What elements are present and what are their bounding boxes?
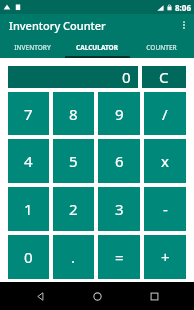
button[interactable]: Back xyxy=(23,282,57,310)
staticText: + xyxy=(161,247,170,267)
button[interactable]: 0 xyxy=(8,235,49,279)
button[interactable]: Home xyxy=(80,282,114,310)
staticText: 0 xyxy=(122,67,131,87)
button[interactable]: . xyxy=(53,235,94,279)
staticText: = xyxy=(115,247,124,267)
staticText: 8:06 xyxy=(175,2,191,13)
staticText: . xyxy=(71,247,76,267)
button[interactable]: 8 xyxy=(53,92,94,135)
staticText: INVENTORY xyxy=(14,43,51,52)
staticText: C xyxy=(159,67,169,87)
staticText: Inventory Counter xyxy=(9,18,106,33)
button[interactable]: COUNTER xyxy=(129,36,194,58)
button[interactable]: 9 xyxy=(98,92,140,135)
staticText: 4 xyxy=(24,151,33,171)
staticText: 1 xyxy=(24,199,33,219)
staticText: - xyxy=(163,199,168,219)
staticText: 8 xyxy=(69,104,78,124)
button[interactable]: 6 xyxy=(98,139,140,183)
staticText: 2 xyxy=(69,199,78,219)
staticText: / xyxy=(162,104,168,124)
staticText: 0 xyxy=(24,247,33,267)
button[interactable]: + xyxy=(144,235,186,279)
staticText: 6 xyxy=(115,151,124,171)
button[interactable]: 7 xyxy=(8,92,49,135)
staticText: x xyxy=(161,151,169,171)
button[interactable]: / xyxy=(144,92,186,135)
staticText: 7 xyxy=(24,104,33,124)
button[interactable]: C xyxy=(142,66,186,88)
button[interactable]: 5 xyxy=(53,139,94,183)
button[interactable]: INVENTORY xyxy=(0,36,64,58)
button[interactable]: More options xyxy=(174,14,194,36)
staticText: COUNTER xyxy=(146,43,177,52)
staticText: CALCULATOR xyxy=(76,43,118,52)
button[interactable]: 1 xyxy=(8,187,49,231)
button[interactable]: 0 xyxy=(8,66,138,88)
staticText: 9 xyxy=(115,104,124,124)
button[interactable]: 2 xyxy=(53,187,94,231)
staticText: 3 xyxy=(115,199,124,219)
button[interactable]: 3 xyxy=(98,187,140,231)
button[interactable]: CALCULATOR xyxy=(64,36,129,58)
button[interactable]: - xyxy=(144,187,186,231)
button[interactable]: 4 xyxy=(8,139,49,183)
staticText: 5 xyxy=(69,151,78,171)
button[interactable]: = xyxy=(98,235,140,279)
button[interactable]: Recent apps xyxy=(137,282,171,310)
button[interactable]: x xyxy=(144,139,186,183)
